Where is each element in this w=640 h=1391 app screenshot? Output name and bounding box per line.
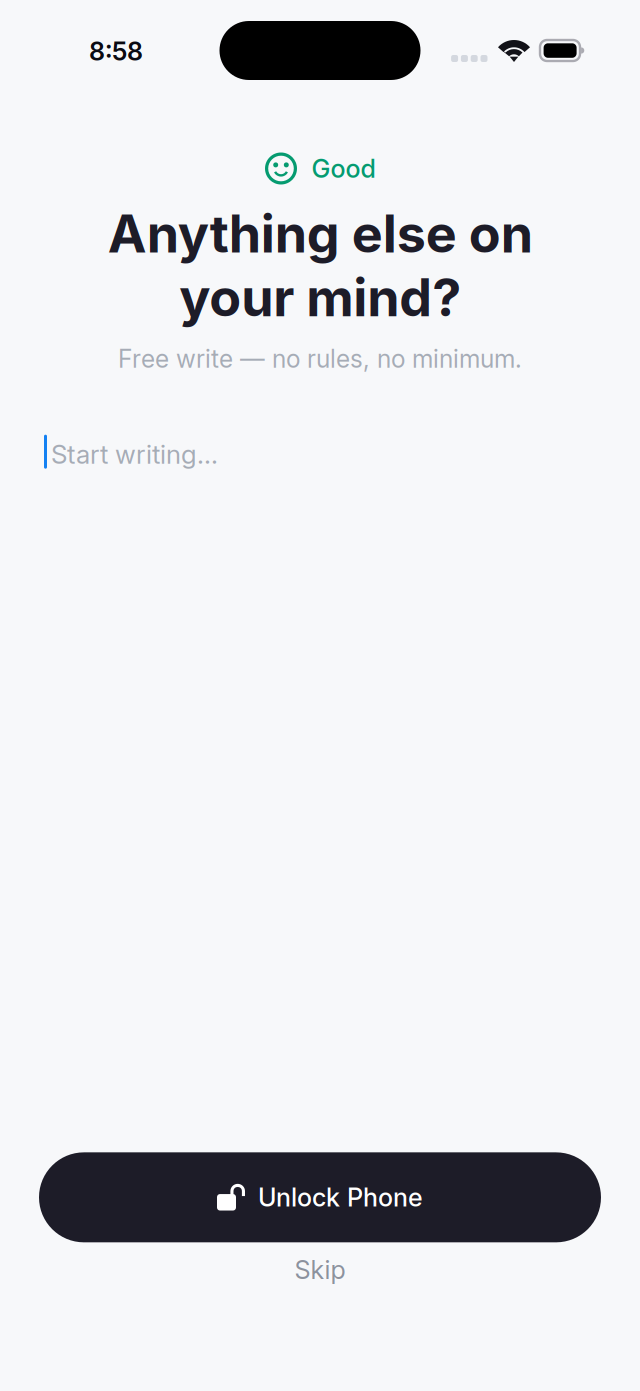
- staticText: Start writing...: [51, 439, 218, 470]
- button[interactable]: Skip: [0, 1245, 640, 1294]
- staticText: Good: [311, 153, 375, 184]
- staticText: Skip: [294, 1254, 345, 1285]
- button[interactable]: Unlock Phone: [39, 1152, 601, 1242]
- staticText: Anything else on your mind?: [107, 202, 532, 329]
- staticText: Free write — no rules, no minimum.: [118, 344, 522, 374]
- staticText: 8:58: [89, 36, 143, 67]
- staticText: Unlock Phone: [258, 1182, 423, 1213]
